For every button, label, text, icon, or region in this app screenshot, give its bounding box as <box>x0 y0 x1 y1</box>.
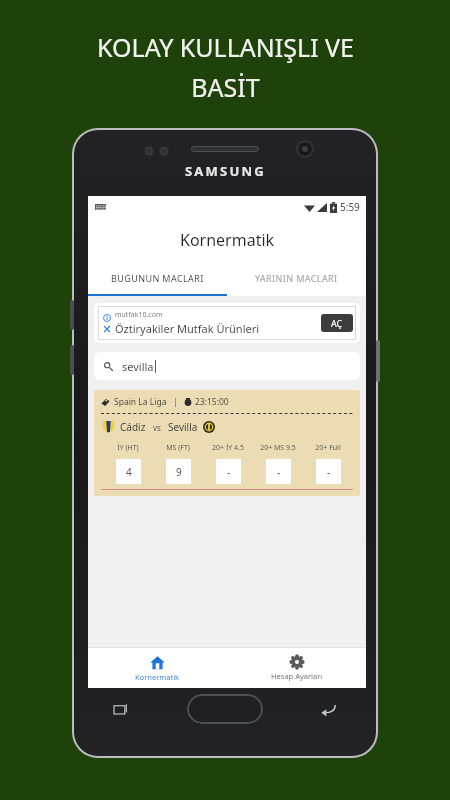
staticText: BASİT <box>191 70 260 104</box>
staticText: 20+ MS 9.5 <box>260 443 296 453</box>
staticText: 9 <box>176 465 182 479</box>
staticText: AÇ <box>331 317 343 329</box>
staticText: 5:59 <box>340 200 360 214</box>
staticText: İY (HT) <box>117 443 139 453</box>
staticText: YARININ MACLARI <box>255 272 338 284</box>
button[interactable]: BUGUNUN MACLARI <box>88 262 227 294</box>
staticText: - <box>277 465 281 479</box>
staticText: 4 <box>126 465 132 479</box>
button[interactable]: Hesap Ayarları <box>227 648 366 688</box>
button[interactable]: Close ad <box>94 303 360 343</box>
button[interactable]: sevilla <box>94 352 360 380</box>
button[interactable]: Spain La Liga <box>94 390 360 496</box>
staticText: SAMSUNG <box>185 162 266 180</box>
other: Close ad <box>103 325 111 333</box>
staticText: mutfak10.com <box>115 310 163 320</box>
staticText: Spain La Liga <box>114 396 167 408</box>
button[interactable]: 4 <box>116 459 141 484</box>
button[interactable]: - <box>316 459 341 484</box>
staticText: Kornermatik <box>135 672 180 682</box>
button[interactable]: 9 <box>166 459 191 484</box>
other: Back <box>321 702 336 717</box>
button[interactable]: - <box>266 459 291 484</box>
button[interactable]: YARININ MACLARI <box>227 262 366 294</box>
button[interactable]: Kornermatik <box>88 648 227 688</box>
staticText: Cádiz <box>120 420 146 434</box>
staticText: MS (FT) <box>166 443 190 453</box>
staticText: 20+ Full <box>315 443 341 453</box>
staticText: Hesap Ayarları <box>271 671 323 681</box>
staticText: Sevilla <box>168 420 198 434</box>
staticText: Öztiryakiler Mutfak Ürünleri <box>115 321 260 336</box>
staticText: | <box>173 396 178 408</box>
button[interactable]: Home <box>187 694 263 724</box>
staticText: - <box>227 465 231 479</box>
staticText: BUGUNUN MACLARI <box>111 272 204 284</box>
other: Recents <box>114 702 129 717</box>
staticText: 20+ İY 4.5 <box>212 443 244 453</box>
button[interactable]: AÇ <box>321 314 353 332</box>
button[interactable]: - <box>216 459 241 484</box>
staticText: KOLAY KULLANIŞLI VE <box>97 30 354 64</box>
staticText: 23:15:00 <box>195 396 229 408</box>
staticText: sevilla <box>122 359 154 374</box>
staticText: vs <box>153 422 161 433</box>
staticText: Kornermatik <box>180 229 275 251</box>
staticText: - <box>327 465 331 479</box>
